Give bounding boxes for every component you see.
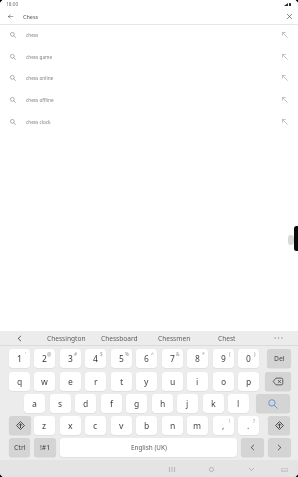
button[interactable]: Previous suggestions — [8, 331, 30, 345]
button[interactable]: a — [24, 394, 45, 413]
staticText: x — [68, 420, 73, 432]
staticText: ( — [229, 351, 231, 358]
button[interactable]: , — [213, 416, 234, 435]
button[interactable]: t — [111, 372, 132, 391]
button[interactable]: u — [162, 372, 183, 391]
button[interactable]: p — [238, 372, 259, 391]
button[interactable]: d — [75, 394, 96, 413]
staticText: # — [74, 351, 78, 358]
button[interactable]: Use suggestion chess online — [275, 67, 295, 89]
staticText: Chess — [23, 13, 39, 20]
button[interactable]: Search — [256, 394, 290, 413]
staticText: !#1 — [40, 443, 51, 452]
button[interactable]: 8 — [187, 349, 208, 368]
button[interactable]: w — [34, 372, 55, 391]
button[interactable]: 6 — [136, 349, 157, 368]
staticText: e — [68, 376, 73, 388]
staticText: r — [94, 376, 98, 388]
staticText: Ctrl — [14, 443, 26, 452]
button[interactable]: 3 — [60, 349, 81, 368]
button[interactable]: o — [213, 372, 234, 391]
button[interactable]: Ctrl — [9, 438, 30, 457]
button[interactable]: c — [85, 416, 106, 435]
button[interactable]: 2 — [34, 349, 55, 368]
button[interactable]: Shift — [9, 416, 31, 435]
button[interactable]: Chest — [201, 331, 253, 345]
button[interactable]: h — [152, 394, 173, 413]
button[interactable]: r — [85, 372, 106, 391]
button[interactable]: 1 — [9, 349, 30, 368]
button[interactable]: !#1 — [34, 438, 56, 457]
staticText: 5 — [119, 353, 124, 365]
button[interactable]: b — [136, 416, 157, 435]
button[interactable]: Chessmen — [148, 331, 200, 345]
staticText: chess online — [26, 75, 54, 81]
button[interactable]: Move cursor right — [268, 438, 291, 457]
button[interactable]: j — [177, 394, 198, 413]
staticText: . — [247, 420, 250, 432]
button[interactable]: f — [101, 394, 122, 413]
button[interactable]: English (UK) — [60, 438, 237, 457]
staticText: u — [170, 376, 176, 388]
staticText: ? — [253, 418, 256, 425]
button[interactable]: Recent apps — [164, 462, 180, 477]
button[interactable]: g — [126, 394, 147, 413]
button[interactable]: Chessboard — [93, 331, 145, 345]
button[interactable]: n — [162, 416, 183, 435]
button[interactable]: Use suggestion chess game — [275, 46, 295, 68]
staticText: ^ — [151, 351, 154, 358]
button[interactable]: e — [60, 372, 81, 391]
staticText: % — [125, 351, 129, 358]
button[interactable]: . — [238, 416, 259, 435]
button[interactable]: Clear search — [281, 9, 297, 23]
button[interactable]: i — [187, 372, 208, 391]
button[interactable]: z — [34, 416, 55, 435]
button[interactable]: Move cursor left — [241, 438, 264, 457]
button[interactable]: x — [60, 416, 81, 435]
button[interactable]: chess offline — [0, 89, 298, 111]
staticText: k — [211, 398, 216, 410]
staticText: 2 — [42, 353, 47, 365]
button[interactable]: 4 — [85, 349, 106, 368]
button[interactable]: chess online — [0, 67, 298, 89]
button[interactable]: 7 — [162, 349, 183, 368]
staticText: a — [32, 398, 37, 410]
button[interactable]: chess clock — [0, 111, 298, 133]
staticText: f — [110, 398, 114, 410]
button[interactable]: Use suggestion chess offline — [275, 89, 295, 111]
staticText: chess clock — [26, 119, 51, 125]
button[interactable]: q — [9, 372, 30, 391]
button[interactable]: Back — [1, 9, 19, 23]
staticText: p — [246, 376, 252, 388]
button[interactable]: Del — [267, 349, 291, 368]
button[interactable]: Use suggestion chess — [275, 24, 295, 46]
button[interactable]: Use suggestion chess clock — [275, 111, 295, 133]
staticText: l — [237, 398, 240, 410]
button[interactable]: Shift — [268, 416, 290, 435]
button[interactable]: y — [136, 372, 157, 391]
button[interactable]: Chessington — [40, 331, 92, 345]
button[interactable]: k — [203, 394, 224, 413]
staticText: chess — [26, 32, 39, 38]
button[interactable]: Change keyboard — [276, 462, 292, 477]
button[interactable]: l — [228, 394, 249, 413]
staticText: English (UK) — [131, 443, 167, 452]
button[interactable]: More suggestions — [266, 331, 290, 345]
staticText: Chessmen — [158, 334, 191, 343]
staticText: 4 — [93, 353, 98, 365]
staticText: z — [42, 420, 47, 432]
button[interactable]: chess — [0, 24, 298, 46]
staticText: j — [186, 398, 189, 410]
button[interactable]: 0 — [238, 349, 259, 368]
button[interactable]: 5 — [111, 349, 132, 368]
button[interactable]: Backspace — [265, 372, 291, 391]
button[interactable]: Back — [243, 462, 259, 477]
button[interactable]: s — [50, 394, 71, 413]
button[interactable]: 9 — [213, 349, 234, 368]
button[interactable]: chess game — [0, 46, 298, 68]
staticText: o — [221, 376, 227, 388]
staticText: i — [196, 376, 199, 388]
button[interactable]: m — [187, 416, 208, 435]
button[interactable]: Home — [203, 462, 219, 477]
button[interactable]: v — [111, 416, 132, 435]
